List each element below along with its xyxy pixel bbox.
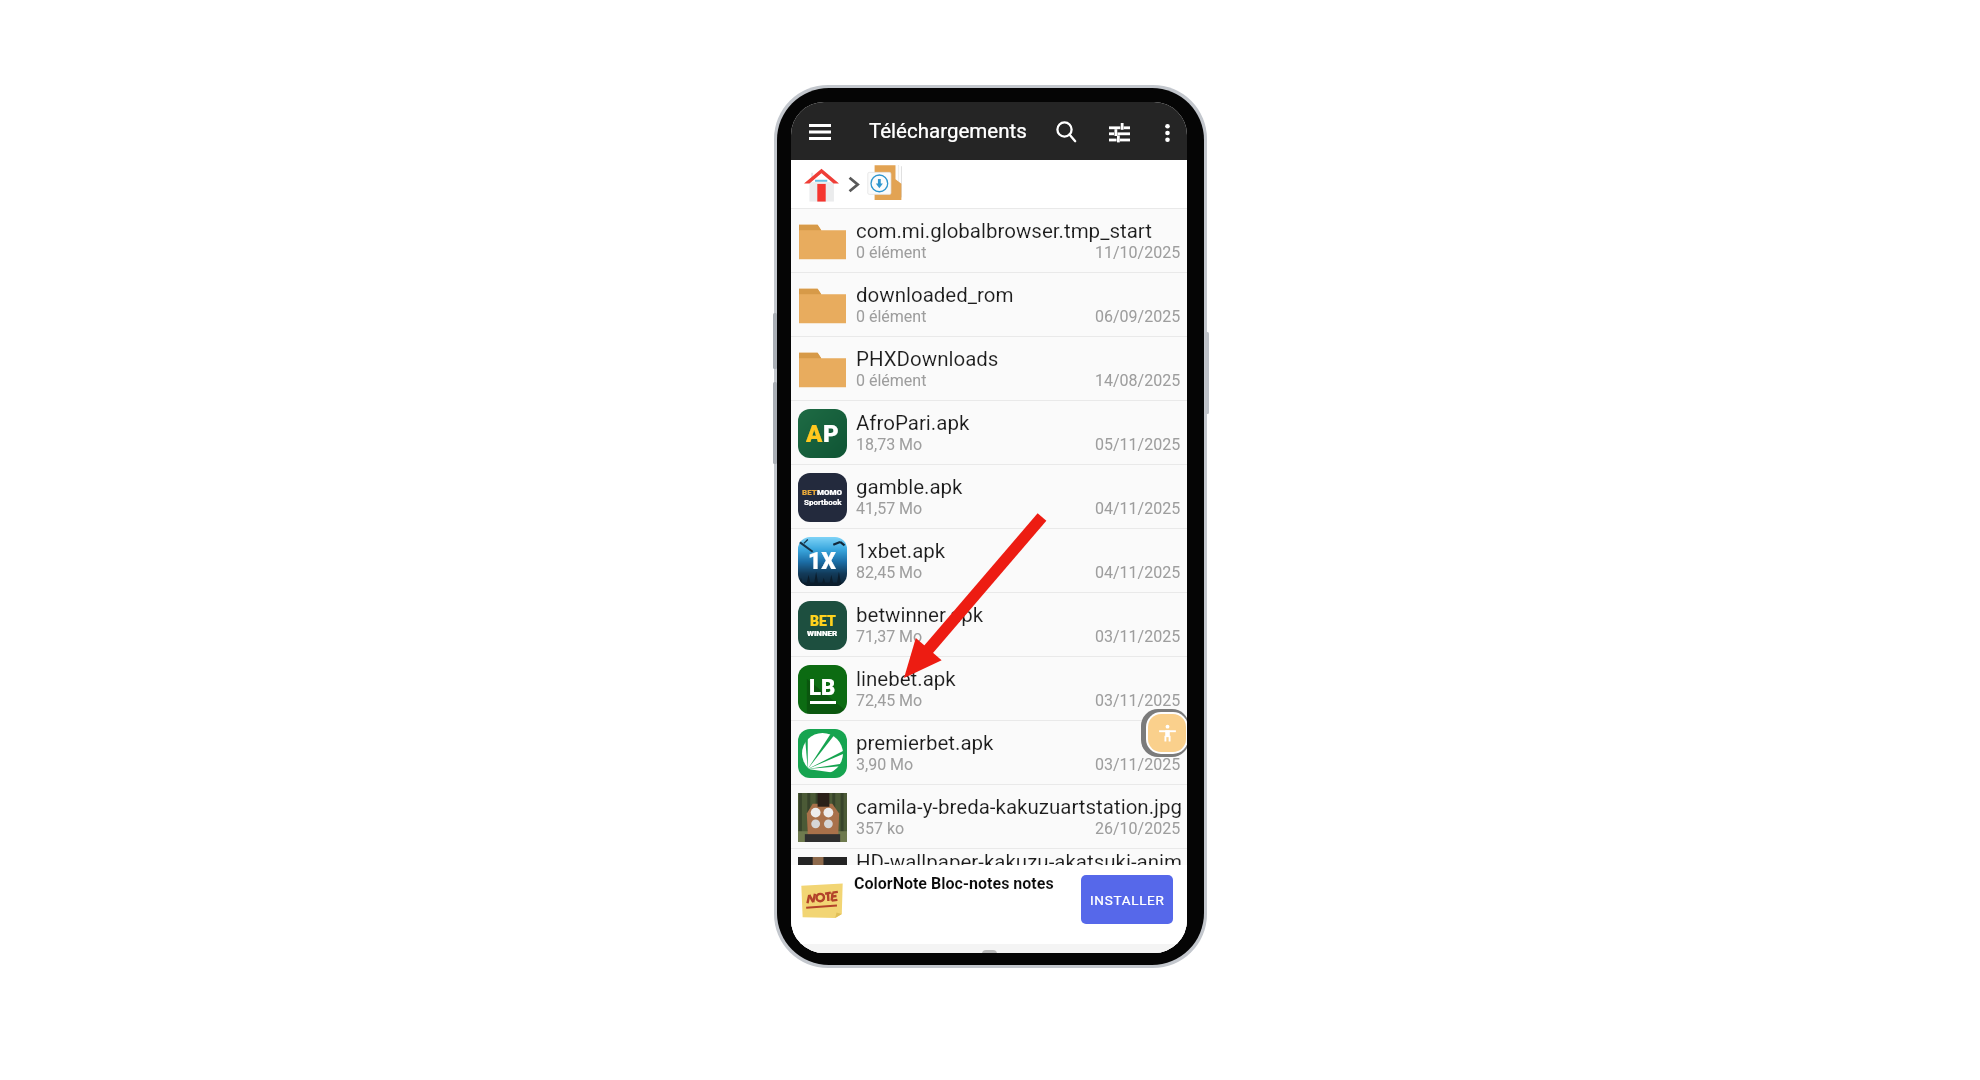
staticText: 41,57 Mo [856,499,923,518]
button[interactable]: Search [1044,109,1088,153]
staticText: 26/10/2025 [1095,819,1181,838]
staticText: P [823,420,839,448]
button[interactable]: Home [798,161,845,208]
staticText: 18,73 Mo [856,435,923,454]
staticText: 0 élément [856,307,927,326]
staticText: 04/11/2025 [1095,563,1181,582]
button[interactable]: BET [791,593,1187,656]
staticText: 3,90 Mo [856,755,914,774]
staticText: camila-y-breda-kakuzuartstation.jpg [856,795,1183,819]
staticText: INSTALLER [1090,892,1165,908]
staticText: 04/11/2025 [1095,499,1181,518]
button[interactable]: com.mi.globalbrowser.tmp_start [791,209,1187,272]
staticText: HD-wallpaper-kakuzu-akatsuki-anim [856,850,1183,874]
button[interactable]: premierbet.apk [791,721,1187,784]
staticText: Téléchargements [869,119,1027,143]
staticText: 82,45 Mo [856,563,923,582]
button[interactable]: BET [791,465,1187,528]
staticText: 06/09/2025 [1095,307,1181,326]
staticText: AfroPari.apk [856,411,970,435]
staticText: MOMO [817,488,843,497]
button[interactable]: downloaded_rom [791,273,1187,336]
staticText: 03/11/2025 [1095,627,1181,646]
button[interactable]: INSTALLER [1081,875,1173,924]
staticText: 1xbet.apk [856,539,946,563]
button[interactable]: Open navigation menu [797,108,842,156]
staticText: PHXDownloads [856,347,999,371]
staticText: com.mi.globalbrowser.tmp_start [856,219,1152,243]
staticText: 03/11/2025 [1095,691,1181,710]
button[interactable]: PHXDownloads [791,337,1187,400]
button[interactable]: Downloads folder [862,160,909,206]
button[interactable]: Advertisement: ColorNote Bloc-notes note… [791,865,1187,944]
button[interactable]: 1X [791,529,1187,592]
staticText: 0 élément [856,371,927,390]
button[interactable]: HD-wallpaper-kakuzu-akatsuki-anim [791,849,1187,912]
staticText: BET [810,613,836,629]
staticText: betwinner.apk [856,603,984,627]
staticText: gamble.apk [856,475,963,499]
staticText: LB [809,675,836,701]
staticText: 357 ko [856,819,905,838]
staticText: downloaded_rom [856,283,1014,307]
staticText: 14/08/2025 [1095,371,1181,390]
staticText: A [806,420,823,448]
button[interactable]: camila-y-breda-kakuzuartstation.jpg [791,785,1187,848]
staticText: 1X [808,548,837,575]
staticText: BET [802,488,817,497]
button[interactable]: Accessibility menu [1141,709,1187,757]
staticText: linebet.apk [856,667,956,691]
staticText: Sportbook [804,498,842,507]
button[interactable]: A [791,401,1187,464]
staticText: WINNER [807,629,838,638]
staticText: 03/11/2025 [1095,755,1181,774]
staticText: 11/10/2025 [1095,243,1181,262]
button[interactable]: More options [1145,112,1187,154]
staticText: 71,37 Mo [856,627,923,646]
staticText: ColorNote Bloc-notes notes [854,874,1054,893]
button[interactable]: Sort and filter [1097,110,1142,156]
staticText: 0 élément [856,243,927,262]
staticText: 72,45 Mo [856,691,923,710]
button[interactable]: LB [791,657,1187,720]
staticText: premierbet.apk [856,731,994,755]
staticText: 05/11/2025 [1095,435,1181,454]
